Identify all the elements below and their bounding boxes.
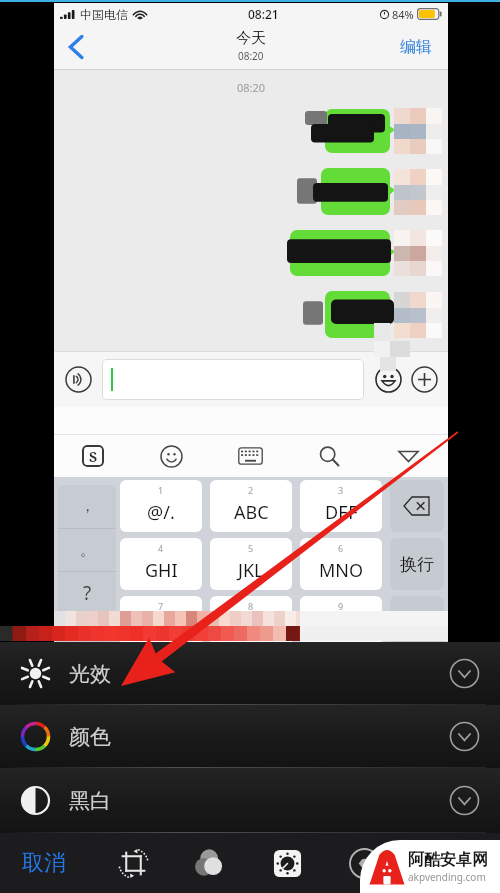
staticText: 取消 bbox=[22, 849, 66, 877]
button[interactable]: 光效 bbox=[0, 642, 500, 705]
button[interactable]: 取消 bbox=[8, 833, 80, 893]
button[interactable]: 2 bbox=[210, 480, 292, 532]
button[interactable]: 黑白 bbox=[0, 768, 500, 833]
button[interactable]: 123 bbox=[58, 615, 116, 642]
staticText: PQRS bbox=[138, 616, 185, 641]
staticText: 9 bbox=[338, 600, 344, 612]
button[interactable]: Markup bbox=[415, 833, 467, 893]
staticText: 颜色 bbox=[69, 724, 111, 750]
button[interactable]: smile bbox=[132, 435, 211, 477]
button[interactable]: search bbox=[290, 435, 369, 477]
button[interactable]: 编辑 bbox=[400, 37, 432, 57]
staticText: 4 bbox=[158, 542, 164, 554]
staticText: 123 bbox=[76, 627, 99, 642]
button[interactable]: Back bbox=[59, 30, 93, 64]
staticText: 1 bbox=[158, 484, 164, 496]
button[interactable]: 1 bbox=[120, 480, 202, 532]
button[interactable] bbox=[291, 286, 390, 343]
button[interactable]: Emoji bbox=[373, 364, 403, 394]
staticText: 08:20 bbox=[54, 80, 448, 95]
staticText: 08:20 bbox=[238, 49, 264, 63]
button[interactable] bbox=[256, 225, 390, 281]
button[interactable]: 7 bbox=[120, 596, 202, 642]
staticText: 中国电信 bbox=[80, 7, 128, 22]
button[interactable]: ? bbox=[58, 572, 116, 614]
button[interactable]: 6 bbox=[300, 538, 382, 590]
button[interactable]: 颜色 bbox=[0, 705, 500, 768]
button[interactable]: 3 bbox=[300, 480, 382, 532]
button[interactable]: down bbox=[369, 435, 448, 477]
button[interactable]: Retouch bbox=[338, 833, 390, 893]
staticText: 。 bbox=[80, 541, 95, 560]
button[interactable] bbox=[102, 359, 364, 400]
button[interactable]: 9 bbox=[300, 596, 382, 642]
staticText: ABC bbox=[234, 500, 269, 525]
staticText: DEF bbox=[325, 500, 358, 525]
staticText: @/. bbox=[147, 500, 175, 525]
staticText: 今天 bbox=[236, 29, 266, 48]
button[interactable]: kb bbox=[211, 435, 290, 477]
staticText: 阿酷安卓网 bbox=[408, 850, 488, 870]
staticText: 7 bbox=[158, 600, 164, 612]
staticText: 2 bbox=[248, 484, 254, 496]
staticText: GHI bbox=[145, 558, 178, 583]
staticText: 3 bbox=[338, 484, 344, 496]
button[interactable]: ， bbox=[58, 485, 116, 528]
button[interactable]: Crop bbox=[107, 833, 159, 893]
staticText: 光效 bbox=[69, 661, 111, 687]
button[interactable]: Voice input bbox=[63, 364, 93, 394]
staticText: TUV bbox=[234, 616, 268, 641]
staticText: 6 bbox=[338, 542, 344, 554]
button[interactable] bbox=[287, 163, 390, 220]
staticText: JKL bbox=[238, 558, 264, 583]
staticText: MNO bbox=[319, 558, 364, 583]
staticText: S bbox=[89, 447, 98, 466]
button[interactable]: S bbox=[54, 435, 132, 477]
staticText: 84% bbox=[392, 7, 414, 22]
staticText: 换行 bbox=[400, 554, 434, 575]
button[interactable]: More bbox=[409, 364, 439, 394]
staticText: 08:21 bbox=[248, 6, 279, 22]
staticText: 5 bbox=[248, 542, 254, 554]
staticText: akpvending.com bbox=[408, 870, 486, 884]
button[interactable]: 换行 bbox=[390, 538, 444, 590]
button[interactable]: Filters bbox=[184, 833, 236, 893]
button[interactable]: 。 bbox=[58, 529, 116, 571]
staticText: 黑白 bbox=[69, 788, 111, 814]
button[interactable]: 5 bbox=[210, 538, 292, 590]
staticText: ， bbox=[80, 497, 95, 516]
staticText: 编辑 bbox=[400, 37, 432, 57]
button[interactable]: Send bbox=[390, 596, 444, 642]
button[interactable]: Delete bbox=[390, 480, 444, 532]
button[interactable]: 8 bbox=[210, 596, 292, 642]
button[interactable]: 4 bbox=[120, 538, 202, 590]
button[interactable] bbox=[291, 104, 390, 158]
button[interactable]: Adjust bbox=[261, 833, 313, 893]
staticText: ? bbox=[83, 580, 92, 606]
staticText: 8 bbox=[248, 600, 254, 612]
